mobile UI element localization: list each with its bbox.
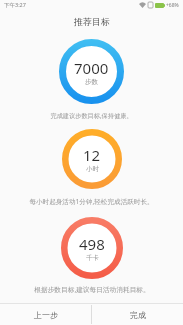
staticText: 完成 bbox=[130, 310, 146, 320]
staticText: 推荐目标 bbox=[74, 16, 110, 27]
staticText: 每小时起身活动1分钟,轻松完成活跃时长。 bbox=[29, 197, 154, 206]
staticText: 上一步 bbox=[34, 310, 58, 320]
staticText: 小时 bbox=[86, 165, 99, 173]
button[interactable]: 上一步 bbox=[0, 304, 91, 325]
staticText: 步数 bbox=[85, 78, 98, 86]
button[interactable]: 完成 bbox=[92, 304, 183, 325]
staticText: 12 bbox=[83, 145, 101, 165]
staticText: +68% bbox=[166, 2, 179, 9]
staticText: 完成建议步数目标,保持健康。 bbox=[50, 111, 133, 119]
staticText: 498 bbox=[79, 234, 105, 254]
staticText: 千卡 bbox=[86, 254, 99, 262]
staticText: 下午3:27 bbox=[4, 1, 26, 9]
staticText: 根据步数目标,建议每日活动消耗目标。 bbox=[34, 285, 150, 294]
staticText: 7000 bbox=[74, 58, 109, 78]
